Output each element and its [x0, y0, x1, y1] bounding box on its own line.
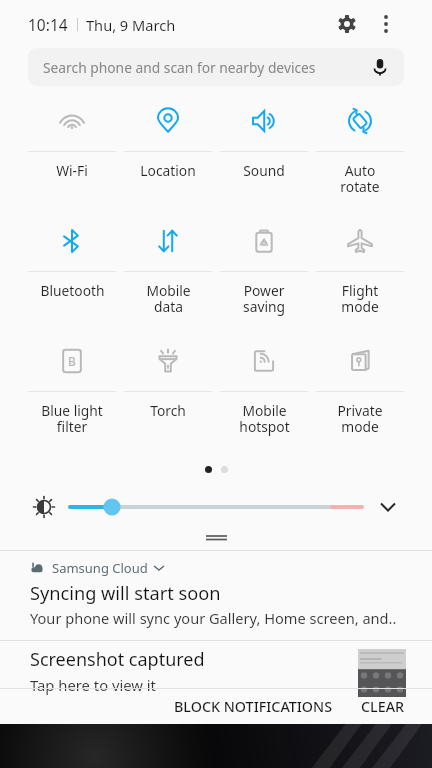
button[interactable]: Location	[120, 97, 216, 217]
staticText: BLOCK NOTIFICATIONS	[174, 697, 333, 716]
staticText: Flight mode	[341, 281, 379, 316]
button[interactable]: BLOCK NOTIFICATIONS	[170, 689, 337, 724]
staticText: Sound	[243, 161, 285, 180]
button[interactable]: Flight mode	[312, 217, 408, 337]
button[interactable]: Settings	[330, 7, 364, 41]
button[interactable]: Torch	[120, 337, 216, 457]
staticText: Blue light filter	[41, 401, 103, 436]
button[interactable]: CLEAR	[357, 689, 409, 724]
button[interactable]: Samsung Cloud	[0, 551, 432, 634]
staticText: Power saving	[243, 281, 285, 316]
staticText: Your phone will sync your Gallery, Home …	[30, 608, 397, 628]
button[interactable]: Mobile data	[120, 217, 216, 337]
staticText: CLEAR	[361, 697, 405, 716]
staticText: Wi-Fi	[56, 161, 88, 180]
button[interactable]: Bluetooth	[24, 217, 120, 337]
staticText: Search phone and scan for nearby devices	[43, 58, 316, 77]
staticText: Mobile data	[146, 281, 191, 316]
staticText: Thu, 9 March	[86, 15, 176, 35]
button[interactable]: B	[24, 337, 120, 457]
staticText: Auto rotate	[340, 161, 380, 196]
staticText: Samsung Cloud	[52, 559, 148, 577]
staticText: Location	[140, 161, 196, 180]
button[interactable]: More options	[371, 9, 401, 39]
button[interactable]: Power saving	[216, 217, 312, 337]
button[interactable]: Mobile hotspot	[216, 337, 312, 457]
staticText: 10:14	[28, 14, 68, 35]
staticText: Private mode	[337, 401, 383, 436]
staticText: Screenshot captured	[30, 647, 205, 672]
button[interactable]: Screenshot captured	[30, 647, 205, 695]
button[interactable]: Search phone and scan for nearby devices	[28, 48, 404, 86]
staticText: Mobile hotspot	[239, 401, 290, 436]
staticText: Bluetooth	[40, 281, 105, 300]
button[interactable]: Auto rotate	[312, 97, 408, 217]
staticText: B	[68, 353, 76, 369]
staticText: Syncing will start soon	[30, 581, 221, 606]
staticText: Tap here to view it	[30, 675, 156, 695]
button[interactable]: Wi-Fi	[24, 97, 120, 217]
button[interactable]: Private mode	[312, 337, 408, 457]
staticText: Torch	[150, 401, 186, 420]
button[interactable]: Sound	[216, 97, 312, 217]
